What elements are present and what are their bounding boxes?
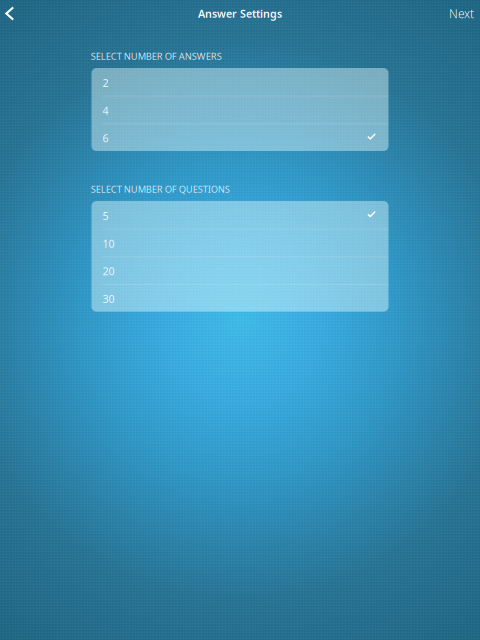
staticText: 30	[102, 292, 114, 306]
button[interactable]: 20	[91, 256, 388, 284]
staticText: 2	[102, 76, 108, 90]
staticText: 5	[102, 209, 108, 223]
button[interactable]: Back	[0, 0, 28, 27]
staticText: SELECT NUMBER OF ANSWERS	[91, 50, 222, 62]
staticText: 10	[102, 236, 114, 251]
staticText: Next	[449, 5, 474, 21]
staticText: 20	[102, 264, 114, 278]
button[interactable]: 6	[91, 123, 388, 151]
button[interactable]: Next	[449, 0, 480, 27]
staticText: 6	[102, 131, 108, 145]
staticText: SELECT NUMBER OF QUESTIONS	[91, 183, 230, 195]
button[interactable]: 30	[91, 284, 388, 312]
staticText: Answer Settings	[198, 6, 282, 21]
button[interactable]: 2	[91, 68, 388, 96]
button[interactable]: 5	[91, 201, 388, 229]
staticText: 4	[102, 103, 108, 118]
button[interactable]: 4	[91, 96, 388, 123]
button[interactable]: 10	[91, 229, 388, 256]
